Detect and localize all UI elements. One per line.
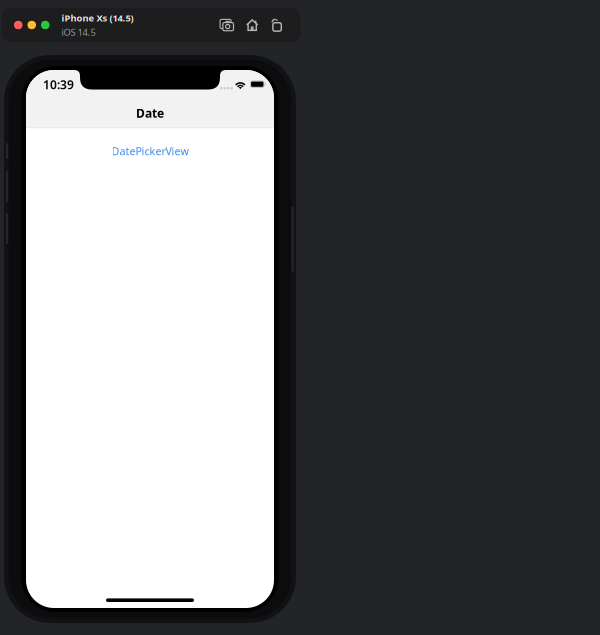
button[interactable]: Close — [14, 21, 22, 29]
button[interactable]: Rotate — [271, 19, 282, 31]
staticText: 10:39 — [43, 76, 74, 92]
staticText: iOS 14.5 — [61, 26, 95, 38]
button[interactable]: Minimize — [27, 21, 36, 29]
staticText: DatePickerView — [111, 144, 188, 158]
staticText: iPhone Xs (14.5) — [61, 12, 133, 24]
button[interactable]: Zoom — [41, 21, 49, 29]
button[interactable]: DatePickerView — [111, 144, 188, 158]
button[interactable]: Home — [246, 19, 258, 31]
staticText: Date — [136, 105, 164, 121]
button[interactable]: Screenshot — [219, 19, 234, 31]
